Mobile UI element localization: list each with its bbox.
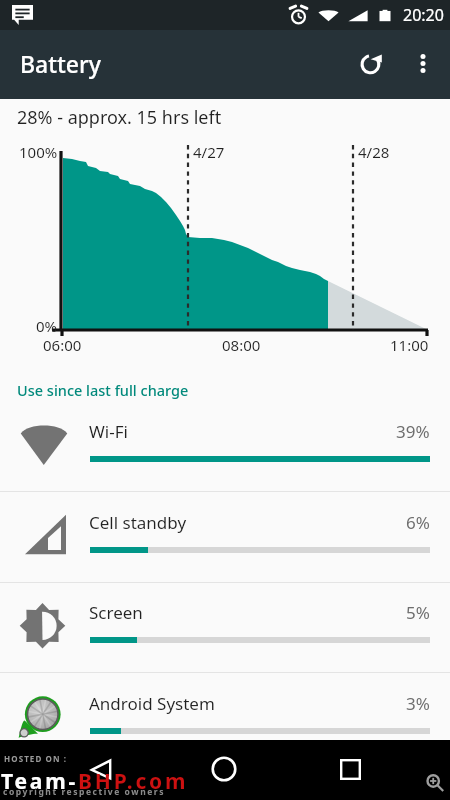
- button[interactable]: Refresh: [348, 30, 394, 99]
- staticText: Team-: [1, 767, 78, 796]
- staticText: HOSTED ON :: [4, 753, 68, 764]
- staticText: 11:00: [390, 335, 429, 355]
- button[interactable]: Home: [196, 740, 252, 800]
- button[interactable]: Zoom in: [426, 773, 445, 792]
- button[interactable]: Recents: [322, 740, 378, 800]
- staticText: 06:00: [43, 335, 82, 355]
- staticText: 28% - approx. 15 hrs left: [17, 105, 222, 130]
- staticText: 0%: [36, 316, 58, 336]
- button[interactable]: Android System: [0, 674, 450, 764]
- staticText: Android System: [89, 692, 215, 715]
- button[interactable]: Wi-Fi: [0, 402, 450, 492]
- staticText: Battery: [20, 48, 101, 79]
- staticText: copyright respective owners: [3, 786, 165, 798]
- button[interactable]: Cell standby: [0, 493, 450, 583]
- button[interactable]: Screen: [0, 583, 450, 673]
- staticText: 08:00: [222, 335, 261, 355]
- staticText: 20:20: [403, 4, 444, 26]
- staticText: 3%: [406, 692, 430, 715]
- button[interactable]: Use since last full charge: [17, 380, 189, 400]
- button[interactable]: More options: [398, 30, 446, 99]
- staticText: Screen: [89, 601, 143, 624]
- staticText: 100%: [19, 142, 58, 162]
- staticText: 4/28: [358, 142, 390, 162]
- staticText: 39%: [396, 420, 430, 443]
- staticText: 6%: [406, 511, 430, 534]
- staticText: BHP.com: [78, 767, 189, 796]
- staticText: 4/27: [193, 142, 225, 162]
- staticText: Cell standby: [89, 511, 187, 534]
- staticText: 5%: [406, 601, 430, 624]
- staticText: Wi-Fi: [89, 420, 128, 443]
- button[interactable]: Back: [73, 740, 129, 800]
